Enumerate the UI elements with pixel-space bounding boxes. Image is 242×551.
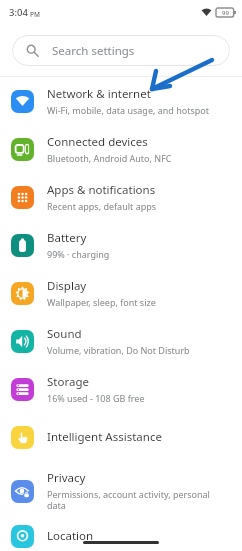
other: Battery 99 percent: [216, 8, 236, 17]
staticText: Display: [47, 278, 87, 294]
staticText: Search settings: [52, 43, 135, 59]
staticText: Recent apps, default apps: [47, 200, 157, 212]
staticText: Bluetooth, Android Auto, NFC: [47, 152, 172, 164]
staticText: Location: [47, 528, 94, 544]
other: Wi-Fi: [201, 7, 212, 18]
button[interactable]: Network & internet: [0, 77, 242, 125]
button[interactable]: Privacy: [0, 461, 242, 521]
staticText: Privacy: [47, 470, 86, 486]
staticText: Wi-Fi, mobile, data usage, and hotspot: [47, 104, 209, 116]
staticText: PM: [30, 10, 40, 19]
staticText: Permissions, account activity, personal …: [47, 488, 210, 512]
button[interactable]: Display: [0, 269, 242, 317]
button[interactable]: Location: [0, 521, 242, 551]
staticText: 3:04: [9, 6, 28, 19]
button[interactable]: Storage: [0, 365, 242, 413]
staticText: Connected devices: [47, 134, 148, 150]
staticText: 99% · charging: [47, 248, 110, 260]
staticText: 16% used - 108 GB free: [47, 392, 145, 404]
staticText: Apps & notifications: [47, 182, 156, 198]
staticText: Sound: [47, 326, 82, 342]
button[interactable]: Search settings: [12, 35, 230, 66]
staticText: Volume, vibration, Do Not Disturb: [47, 344, 190, 356]
button[interactable]: Connected devices: [0, 125, 242, 173]
staticText: Storage: [47, 374, 89, 390]
button[interactable]: Intelligent Assistance: [0, 413, 242, 461]
staticText: 99: [222, 9, 229, 17]
staticText: Intelligent Assistance: [47, 429, 162, 445]
button[interactable]: Sound: [0, 317, 242, 365]
button[interactable]: Apps & notifications: [0, 173, 242, 221]
button[interactable]: Battery: [0, 221, 242, 269]
staticText: Wallpaper, sleep, font size: [47, 296, 156, 308]
staticText: Battery: [47, 230, 87, 246]
staticText: Network & internet: [47, 86, 151, 102]
